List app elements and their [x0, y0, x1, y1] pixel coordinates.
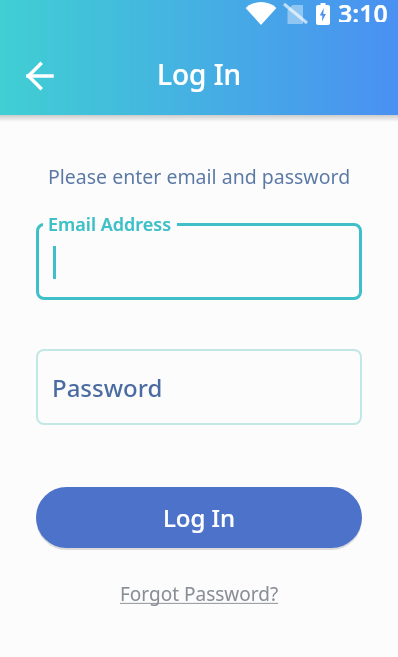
button[interactable]: Forgot Password?	[120, 581, 279, 607]
staticText: Log In	[163, 501, 236, 534]
staticText: Log In	[157, 55, 242, 93]
staticText: Forgot Password?	[120, 581, 279, 607]
staticText: Please enter email and password	[48, 163, 351, 190]
button[interactable]: Log In	[36, 487, 362, 548]
staticText: Password	[52, 371, 163, 404]
staticText: 3:10	[338, 0, 388, 22]
button[interactable]	[26, 62, 54, 90]
button[interactable]: Password	[36, 349, 362, 425]
button[interactable]	[36, 223, 362, 300]
staticText: Email Address	[48, 212, 172, 237]
